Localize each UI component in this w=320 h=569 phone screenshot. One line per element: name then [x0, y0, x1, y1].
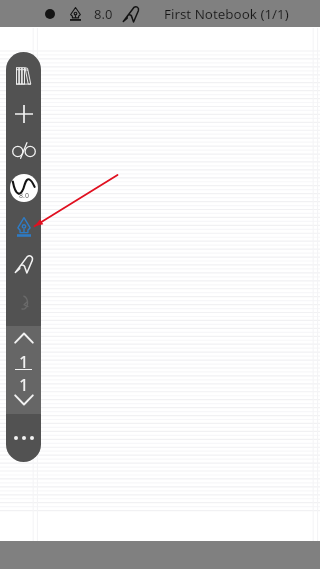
button[interactable]: Colour	[40, 4, 60, 24]
button[interactable]: Next page	[6, 383, 41, 417]
button[interactable]: Notebook library	[6, 59, 41, 93]
staticText: 8.0	[94, 5, 113, 23]
button[interactable]: Pen	[6, 210, 41, 244]
staticText: First Notebook (1/1)	[164, 5, 289, 23]
button[interactable]: Undo	[6, 286, 41, 320]
button[interactable]: Select	[6, 247, 41, 281]
button[interactable]: Previous page	[6, 321, 41, 355]
button[interactable]: More options	[6, 426, 41, 450]
button[interactable]: Add page	[6, 97, 41, 131]
button[interactable]: Pen tool	[65, 4, 85, 24]
staticText: 1	[19, 373, 29, 396]
staticText: 8.0	[19, 191, 29, 201]
button[interactable]: Stroke width 8.0	[10, 174, 38, 202]
staticText: 1	[19, 350, 29, 373]
button[interactable]: Select tool	[121, 4, 141, 24]
button[interactable]: Continuous scroll	[6, 133, 41, 167]
